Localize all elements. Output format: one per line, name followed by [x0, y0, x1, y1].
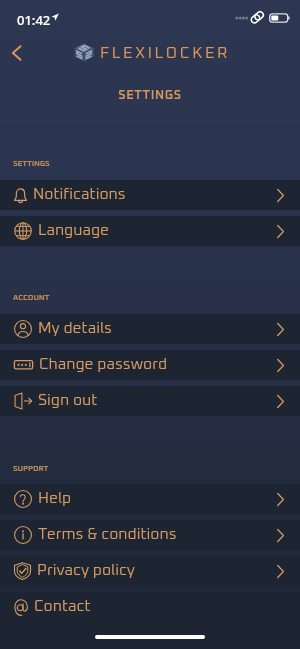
button[interactable]: Privacy policy: [0, 556, 300, 586]
button[interactable]: Contact: [0, 592, 300, 622]
staticText: Sign out: [38, 393, 98, 409]
staticText: ACCOUNT: [13, 294, 50, 302]
staticText: SETTINGS: [13, 160, 50, 168]
staticText: Change password: [39, 357, 168, 373]
staticText: FLEXILOCKER: [100, 45, 231, 61]
button[interactable]: Language: [0, 216, 300, 246]
button[interactable]: Back: [2, 38, 32, 68]
staticText: SETTINGS: [0, 89, 300, 102]
staticText: Contact: [34, 599, 91, 615]
button[interactable]: Notifications: [0, 180, 300, 210]
staticText: 01:42: [17, 11, 51, 29]
staticText: Notifications: [33, 187, 126, 203]
button[interactable]: Change password: [0, 350, 300, 380]
staticText: SUPPORT: [13, 465, 49, 473]
staticText: Privacy policy: [37, 563, 136, 579]
button[interactable]: Terms & conditions: [0, 520, 300, 550]
staticText: Terms & conditions: [38, 527, 177, 543]
staticText: My details: [38, 321, 112, 337]
button[interactable]: My details: [0, 314, 300, 344]
button[interactable]: Help: [0, 484, 300, 514]
button[interactable]: Sign out: [0, 386, 300, 416]
staticText: Language: [38, 223, 110, 239]
staticText: Help: [38, 491, 72, 507]
